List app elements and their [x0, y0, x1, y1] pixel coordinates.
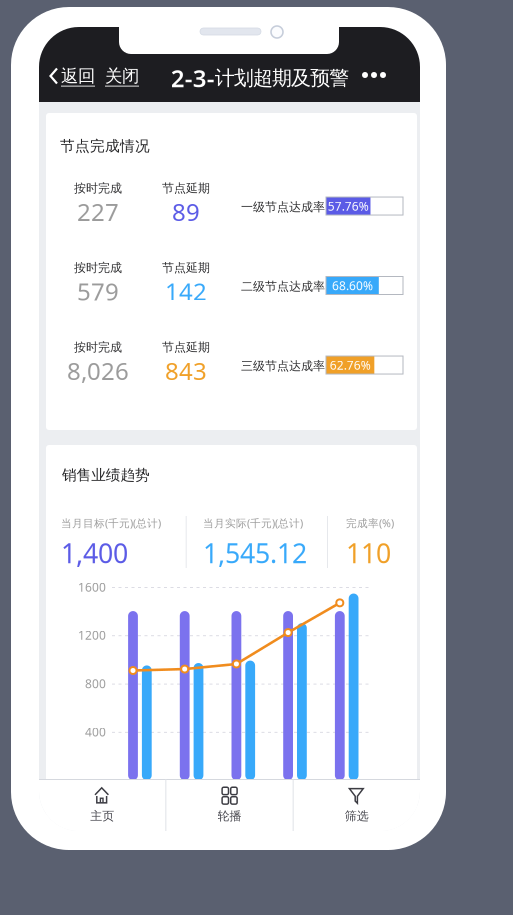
staticText: 一级节点达成率 [241, 200, 325, 214]
staticText: 843 [165, 355, 207, 387]
staticText: 筛选 [345, 809, 369, 823]
staticText: 68.60% [332, 277, 373, 293]
button[interactable]: 返回 [48, 61, 96, 91]
staticText: 节点延期 [162, 260, 210, 275]
staticText: 8,026 [67, 355, 129, 387]
staticText: 节点延期 [162, 181, 210, 196]
staticText: 57.76% [328, 198, 369, 214]
button[interactable]: 筛选 [294, 779, 420, 831]
button[interactable]: 主页 [39, 779, 165, 831]
button[interactable]: 关闭 [99, 61, 145, 91]
staticText: 节点完成情况 [60, 137, 150, 155]
staticText: 1200 [78, 627, 106, 643]
staticText: 当月目标(千元)(总计) [61, 516, 161, 530]
staticText: 2-3- [171, 62, 215, 94]
staticText: 按时完成 [74, 260, 122, 275]
staticText: 节点延期 [162, 340, 210, 355]
staticText: 579 [77, 275, 119, 307]
staticText: 当月实际(千元)(总计) [203, 516, 303, 530]
staticText: 110 [346, 535, 391, 571]
staticText: 227 [77, 196, 119, 228]
staticText: 142 [165, 275, 207, 307]
staticText: 轮播 [217, 809, 241, 823]
staticText: 1600 [78, 579, 106, 595]
staticText: 二级节点达成率 [241, 279, 325, 294]
staticText: 400 [85, 724, 106, 740]
staticText: 按时完成 [74, 340, 122, 355]
staticText: 89 [172, 196, 200, 228]
staticText: 三级节点达成率 [241, 359, 325, 373]
staticText: 关闭 [105, 65, 139, 87]
button[interactable]: 轮播 [166, 779, 293, 831]
staticText: 800 [85, 676, 106, 691]
staticText: 1,400 [61, 535, 128, 571]
staticText: 返回 [61, 65, 95, 87]
staticText: 计划超期及预警 [215, 66, 349, 90]
staticText: 按时完成 [74, 181, 122, 196]
staticText: 62.76% [330, 357, 371, 373]
staticText: 完成率(%) [346, 516, 394, 530]
staticText: 销售业绩趋势 [62, 466, 150, 484]
staticText: 1,545.12 [203, 535, 307, 571]
staticText: 主页 [90, 809, 114, 823]
button[interactable]: More options [351, 58, 397, 92]
